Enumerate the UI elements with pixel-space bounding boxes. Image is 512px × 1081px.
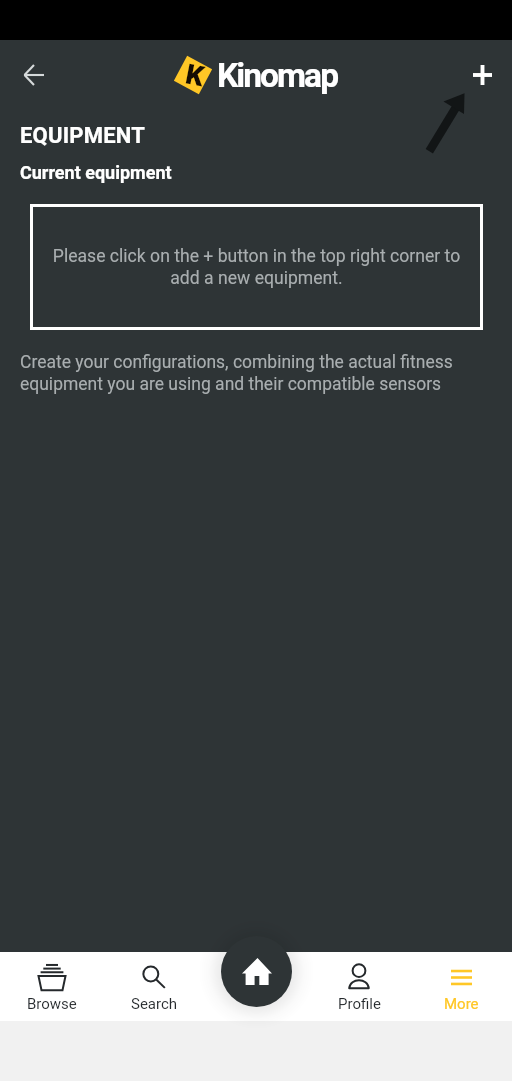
button[interactable]: Search	[103, 952, 206, 1021]
staticText: Browse	[27, 995, 77, 1013]
staticText: EQUIPMENT	[20, 123, 145, 149]
button[interactable]: Browse	[0, 952, 103, 1021]
staticText: Profile	[338, 995, 381, 1013]
staticText: K	[183, 58, 207, 93]
button[interactable]: Back	[14, 55, 54, 95]
staticText: Current equipment	[20, 162, 172, 183]
button[interactable]: Profile	[308, 952, 410, 1021]
button[interactable]: Home	[221, 936, 292, 1007]
button[interactable]: More	[410, 952, 512, 1021]
staticText: Search	[131, 995, 178, 1013]
staticText: Kinomap	[217, 56, 338, 95]
staticText: More	[444, 995, 479, 1013]
button[interactable]: Add equipment	[462, 55, 502, 95]
staticText: Please click on the + button in the top …	[42, 246, 471, 288]
staticText: Create your configurations, combining th…	[20, 352, 464, 394]
